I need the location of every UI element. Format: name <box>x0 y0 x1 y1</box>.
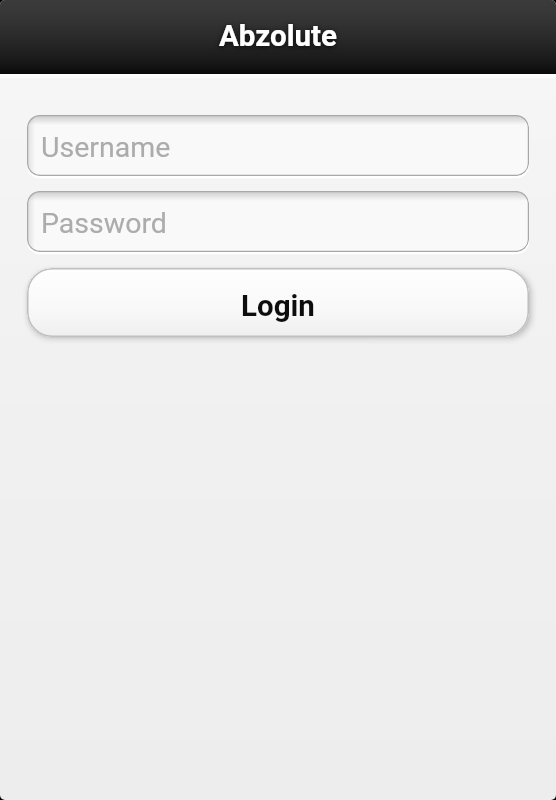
staticText: Password <box>41 207 167 240</box>
button[interactable]: Password <box>27 191 529 252</box>
staticText: Username <box>41 131 171 164</box>
button[interactable]: Username <box>27 115 529 176</box>
staticText: Abzolute <box>219 19 337 54</box>
staticText: Login <box>241 289 315 324</box>
button[interactable]: Login <box>27 268 529 337</box>
